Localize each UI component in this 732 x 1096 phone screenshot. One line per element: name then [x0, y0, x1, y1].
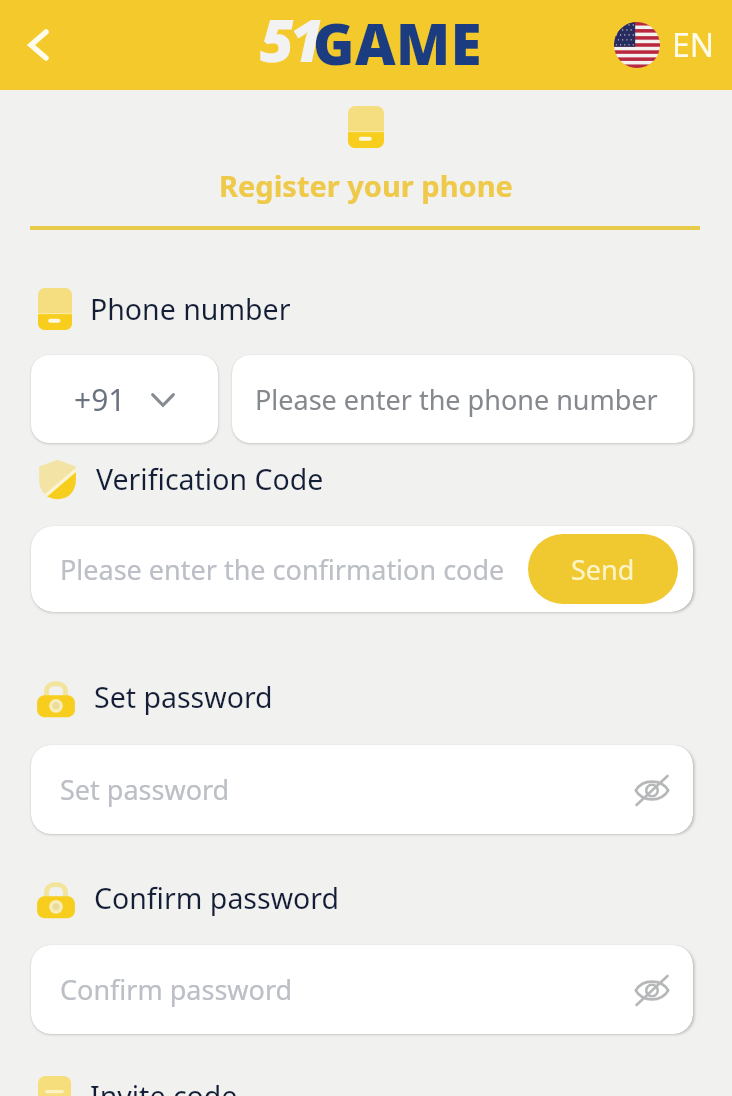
staticText: Set password	[94, 678, 273, 717]
button[interactable]: Confirm password	[31, 945, 693, 1034]
button[interactable]: Please enter the phone number	[232, 355, 693, 443]
button[interactable]: EN	[614, 22, 715, 68]
button[interactable]: Show password	[630, 968, 674, 1012]
staticText: 51	[260, 0, 320, 79]
staticText: Confirm password	[60, 971, 293, 1008]
button[interactable]: +91	[31, 355, 218, 443]
staticText: +91	[74, 379, 126, 420]
staticText: Register your phone	[219, 166, 513, 205]
staticText: EN	[672, 23, 715, 67]
button[interactable]: Set password	[31, 745, 693, 834]
staticText: Please enter the phone number	[255, 381, 658, 418]
staticText: Confirm password	[94, 879, 340, 918]
button[interactable]: Show password	[630, 768, 674, 812]
button[interactable]: Send	[528, 534, 678, 604]
staticText: Verification Code	[96, 460, 324, 499]
staticText: Phone number	[90, 290, 291, 329]
staticText: Please enter the confirmation code	[60, 551, 505, 588]
staticText: Set password	[60, 771, 230, 808]
button[interactable]: Please enter the confirmation code	[31, 526, 693, 612]
staticText: Send	[571, 551, 635, 588]
staticText: Invite code	[90, 1077, 238, 1096]
button[interactable]: Back	[10, 17, 66, 73]
staticText: GAME	[313, 5, 482, 81]
